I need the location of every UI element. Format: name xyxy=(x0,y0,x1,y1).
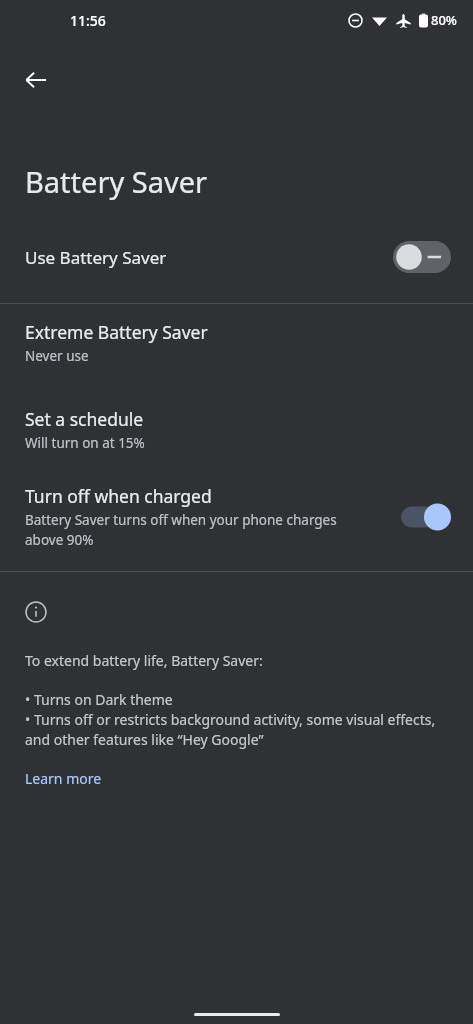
button[interactable]: Back xyxy=(12,56,60,104)
staticText: Set a schedule xyxy=(25,407,144,431)
staticText: 80% xyxy=(431,11,457,29)
button[interactable]: Use Battery Saver xyxy=(0,233,473,281)
staticText: Battery Saver turns off when your phone … xyxy=(25,511,365,549)
staticText: Extreme Battery Saver xyxy=(25,320,208,344)
staticText: • Turns on Dark theme • Turns off or res… xyxy=(25,690,451,749)
button[interactable]: Learn more xyxy=(25,769,102,788)
staticText: To extend battery life, Battery Saver: xyxy=(25,651,263,670)
button[interactable]: Set a schedule xyxy=(0,405,473,454)
staticText: Use Battery Saver xyxy=(25,246,393,269)
staticText: Turn off when charged xyxy=(25,484,212,508)
button[interactable]: Turn off when charged xyxy=(0,484,473,549)
staticText: 11:56 xyxy=(70,11,106,30)
staticText: Learn more xyxy=(25,769,102,788)
staticText: Never use xyxy=(25,347,89,365)
button[interactable]: Extreme Battery Saver xyxy=(0,318,473,367)
staticText: Battery Saver xyxy=(25,162,207,201)
staticText: Will turn on at 15% xyxy=(25,434,145,452)
